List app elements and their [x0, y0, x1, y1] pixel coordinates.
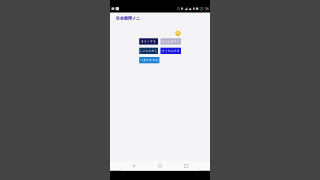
button[interactable]: つぎのすすめ — [139, 57, 159, 63]
button[interactable]: そうだんする — [160, 48, 181, 54]
staticText: つぎのすすめ — [140, 58, 158, 62]
staticText: きぶんきろく — [162, 40, 180, 43]
button[interactable]: Recents — [173, 161, 199, 170]
staticText: 社会復帰メニ — [116, 16, 140, 20]
button[interactable]: しごとさがし — [139, 48, 158, 54]
staticText: そうだんする — [162, 49, 180, 52]
button[interactable]: きろくする — [139, 38, 158, 45]
button[interactable]: きぶんきろく — [160, 38, 181, 45]
button[interactable]: Back — [121, 161, 147, 170]
staticText: しごとさがし — [140, 49, 158, 52]
staticText: 21:38 — [200, 6, 209, 11]
button[interactable]: Home — [147, 161, 173, 170]
staticText: きろくする — [141, 40, 156, 43]
